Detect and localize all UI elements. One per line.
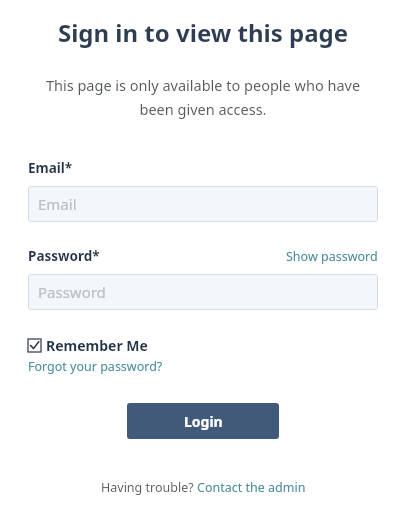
button[interactable]: Contact the admin	[197, 479, 306, 496]
other: Remember Me checkbox	[28, 339, 41, 352]
staticText: Login	[184, 412, 223, 431]
staticText: Password*	[28, 247, 100, 265]
button[interactable]: Forgot your password?	[28, 358, 163, 375]
staticText: This page is only available to people wh…	[30, 75, 376, 119]
staticText: Show password	[286, 248, 378, 265]
button[interactable]: Password	[28, 274, 378, 310]
staticText: Email	[38, 194, 77, 214]
staticText: Email*	[28, 159, 73, 177]
staticText: Sign in to view this page	[0, 16, 406, 49]
staticText: Password	[38, 282, 106, 302]
button[interactable]: Remember Me checkbox	[28, 336, 148, 355]
button[interactable]: Login	[127, 403, 279, 439]
staticText: Forgot your password?	[28, 358, 163, 375]
button[interactable]: Email	[28, 186, 378, 222]
button[interactable]: Show password	[286, 248, 378, 265]
staticText: Contact the admin	[197, 479, 306, 496]
staticText: Having trouble?	[101, 479, 197, 496]
staticText: Remember Me	[46, 336, 148, 355]
